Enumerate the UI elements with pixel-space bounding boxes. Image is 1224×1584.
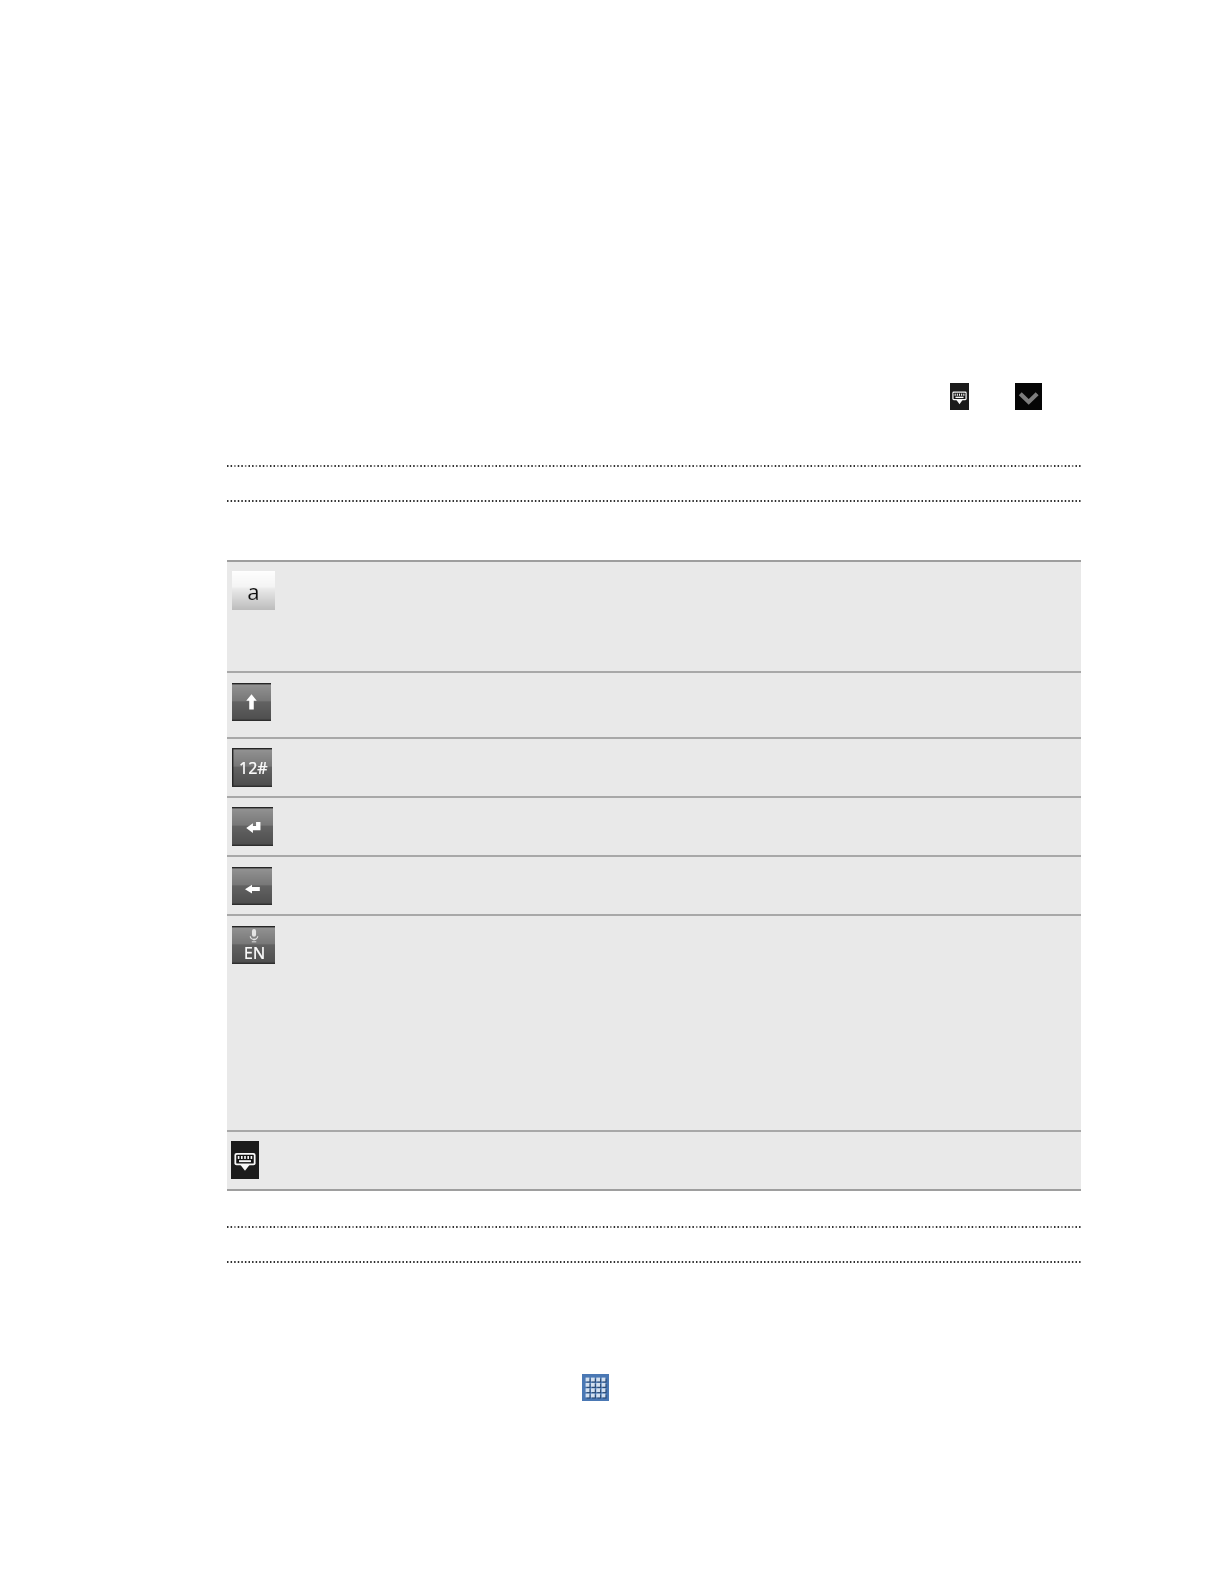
button[interactable]: Backspace key (232, 867, 272, 905)
button[interactable]: Hide keyboard key (227, 1132, 1081, 1189)
button[interactable]: Collapse section (1015, 383, 1042, 410)
button[interactable]: Backspace key (227, 857, 1081, 914)
staticText: a (247, 576, 260, 606)
button[interactable]: Shift key (227, 673, 1081, 737)
staticText: EN (244, 942, 266, 964)
button[interactable]: Numbers and symbols key (227, 739, 1081, 796)
button[interactable]: Shift key (232, 683, 271, 721)
button[interactable]: Enter key (227, 798, 1081, 855)
button[interactable]: Letter key (232, 571, 275, 610)
button[interactable]: Open keypad (582, 1374, 609, 1401)
button[interactable]: Letter key (227, 562, 1081, 671)
staticText: 12# (239, 757, 268, 779)
button[interactable]: Voice input and language key (227, 916, 1081, 1130)
button[interactable]: Voice input and language key (232, 926, 275, 964)
button[interactable]: Numbers and symbols key (232, 748, 272, 787)
button[interactable]: Hide keyboard key (231, 1141, 259, 1179)
button[interactable]: Hide keyboard (950, 383, 969, 410)
button[interactable]: Enter key (232, 807, 273, 846)
